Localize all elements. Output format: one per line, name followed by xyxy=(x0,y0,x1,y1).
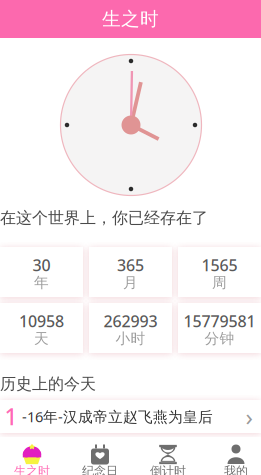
staticText: › xyxy=(245,401,252,432)
staticText: 月 xyxy=(123,273,138,291)
staticText: 历史上的今天 xyxy=(0,374,96,394)
staticText: 天 xyxy=(34,329,49,347)
staticText: 生之时 xyxy=(102,7,159,30)
staticText: 生之时 xyxy=(14,464,50,475)
button[interactable]: 生之时 xyxy=(0,0,261,38)
button[interactable]: 纪念日 xyxy=(66,437,134,475)
staticText: 365 xyxy=(117,254,144,276)
staticText: 小时 xyxy=(115,329,145,347)
staticText: -16年-汉成帝立赵飞燕为皇后 xyxy=(22,407,213,426)
staticText: 1 xyxy=(4,401,17,431)
staticText: 分钟 xyxy=(204,329,234,347)
staticText: 10958 xyxy=(19,310,64,332)
staticText: 年 xyxy=(34,273,49,291)
staticText: 15779581 xyxy=(183,310,255,332)
staticText: 纪念日 xyxy=(82,464,118,475)
button[interactable]: 倒计时 xyxy=(134,437,202,475)
staticText: 我的 xyxy=(224,464,248,475)
staticText: 周 xyxy=(212,273,227,291)
staticText: 30 xyxy=(32,254,50,276)
staticText: 倒计时 xyxy=(150,464,186,475)
button[interactable]: 1 xyxy=(0,400,261,433)
staticText: 262993 xyxy=(103,310,157,332)
staticText: 在这个世界上，你已经存在了 xyxy=(0,208,208,228)
staticText: 1565 xyxy=(201,254,237,276)
button[interactable]: 生之时 xyxy=(0,437,66,475)
button[interactable]: 我的 xyxy=(202,437,261,475)
